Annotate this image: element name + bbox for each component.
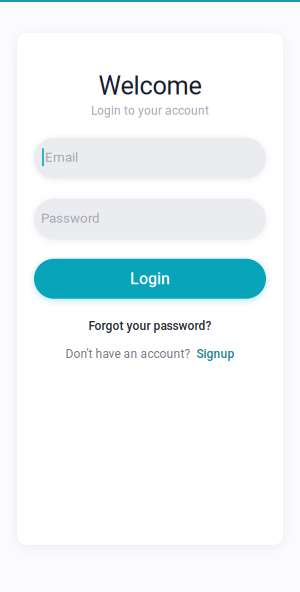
button[interactable]: Login (34, 259, 266, 299)
button[interactable]: Signup (196, 347, 234, 361)
staticText: Password (41, 210, 100, 226)
staticText: Login to your account (91, 104, 209, 118)
staticText: Don't have an account? (65, 347, 190, 361)
button[interactable]: Forgot your password? (88, 319, 211, 333)
staticText: Signup (196, 347, 234, 361)
staticText: Forgot your password? (88, 319, 211, 333)
staticText: Welcome (98, 71, 201, 101)
staticText: Login (130, 269, 170, 288)
staticText: Email (45, 149, 78, 165)
